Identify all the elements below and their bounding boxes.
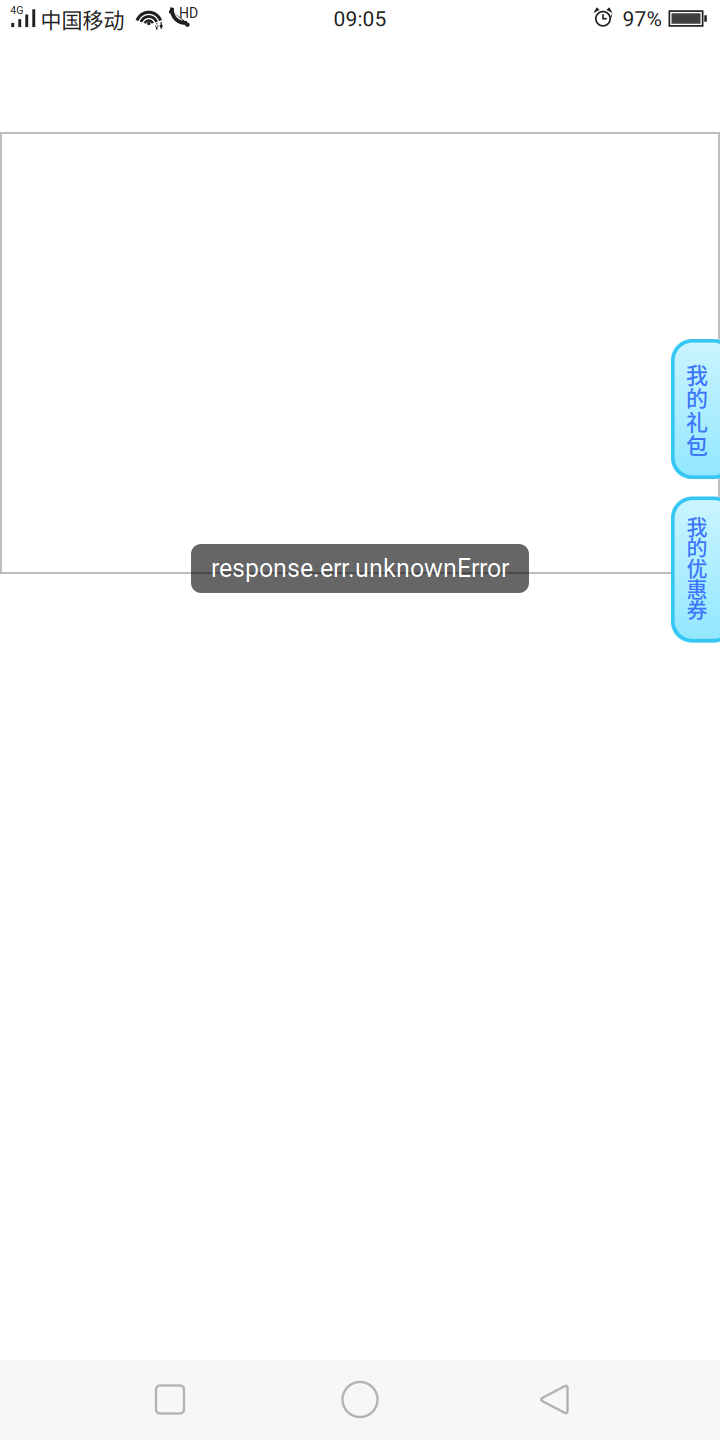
staticText: response.err.unknownError xyxy=(211,554,509,583)
button[interactable]: Back xyxy=(505,1359,601,1439)
staticText: 的 xyxy=(686,531,707,561)
staticText: 我 xyxy=(686,510,707,541)
staticText: 券 xyxy=(686,593,707,624)
button[interactable]: Recents xyxy=(122,1359,218,1439)
staticText: 我 xyxy=(686,358,708,390)
staticText: 09:05 xyxy=(333,7,386,31)
staticText: HD xyxy=(179,5,198,21)
button[interactable]: 我 xyxy=(671,496,720,642)
staticText: 优 xyxy=(686,552,707,582)
staticText: 4G xyxy=(10,4,23,16)
staticText: 中国移动 xyxy=(40,3,124,34)
staticText: 97% xyxy=(622,7,661,31)
staticText: 的 xyxy=(686,381,708,413)
button[interactable]: Home xyxy=(312,1359,408,1439)
staticText: 礼 xyxy=(686,405,708,437)
staticText: 惠 xyxy=(686,573,707,603)
staticText: 包 xyxy=(686,428,708,460)
button[interactable]: 我 xyxy=(671,339,720,479)
